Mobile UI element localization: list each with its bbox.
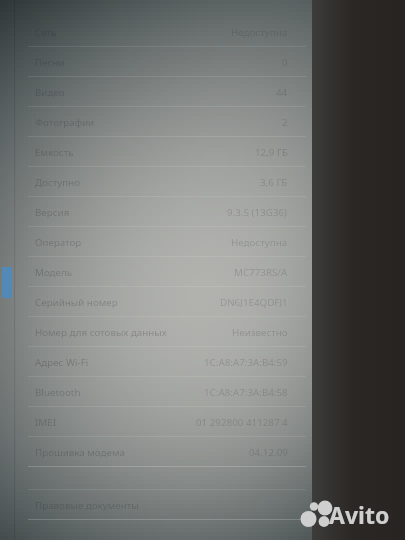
staticText: 1C:A8:A7:3A:B4:59 [204, 356, 288, 369]
staticText: IMEI [35, 416, 56, 429]
staticText: MC773RS/A [234, 266, 288, 279]
staticText: 9.3.5 (13G36) [227, 206, 288, 219]
staticText: Avito [329, 499, 390, 527]
button[interactable]: Правовые документы [0, 489, 312, 519]
button[interactable]: Версия [0, 196, 312, 226]
button[interactable]: Песни [0, 46, 312, 76]
staticText: 2 [282, 116, 288, 129]
button[interactable]: Сеть [0, 16, 312, 46]
button[interactable]: Bluetooth [0, 376, 312, 406]
staticText: Доступно [35, 176, 81, 189]
staticText: 3,6 ГБ [260, 176, 288, 189]
staticText: Bluetooth [35, 386, 81, 399]
button[interactable]: Адрес Wi-Fi [0, 346, 312, 376]
staticText: 44 [276, 86, 288, 99]
staticText: 0 [282, 56, 288, 69]
staticText: DN6J1E4QDFJ1 [220, 296, 288, 309]
staticText: Номер для сотовых данных [35, 326, 167, 339]
staticText: Песни [35, 56, 65, 69]
button[interactable]: Видео [0, 76, 312, 106]
staticText: 12,9 ГБ [255, 146, 288, 159]
button[interactable]: Оператор [0, 226, 312, 256]
staticText: Версия [35, 206, 70, 219]
button[interactable]: Серийный номер [0, 286, 312, 316]
button[interactable]: Модель [0, 256, 312, 286]
staticText: Сеть [35, 26, 57, 39]
staticText: 04.12.09 [249, 446, 288, 459]
button[interactable]: Номер для сотовых данных [0, 316, 312, 346]
button[interactable]: Емкость [0, 136, 312, 166]
staticText: 01 292800 411287 4 [196, 416, 288, 429]
staticText: Адрес Wi-Fi [35, 356, 89, 369]
staticText: Фотографии [35, 116, 95, 129]
staticText: Неизвестно [232, 326, 288, 339]
staticText: Недоступна [231, 26, 288, 39]
staticText: Прошивка модема [35, 446, 125, 459]
staticText: Емкость [35, 146, 74, 159]
staticText: 1C:A8:A7:3A:B4:58 [204, 386, 288, 399]
button[interactable]: IMEI [0, 406, 312, 436]
staticText: Видео [35, 86, 65, 99]
button[interactable]: Фотографии [0, 106, 312, 136]
staticText: Оператор [35, 236, 82, 249]
button[interactable]: Доступно [0, 166, 312, 196]
button[interactable]: Прошивка модема [0, 436, 312, 466]
staticText: Серийный номер [35, 296, 118, 309]
staticText: Правовые документы [35, 499, 139, 512]
staticText: Недоступна [231, 236, 288, 249]
staticText: Модель [35, 266, 73, 279]
